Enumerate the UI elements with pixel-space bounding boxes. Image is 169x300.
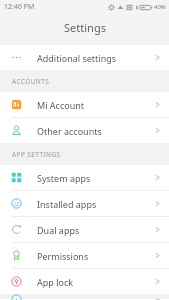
staticText: ACCOUNTS: [12, 77, 50, 86]
staticText: Other accounts: [37, 125, 102, 137]
button[interactable]: Additional settings: [0, 45, 169, 70]
staticText: Mi Account: [37, 99, 85, 111]
staticText: System apps: [37, 172, 91, 184]
staticText: Settings: [64, 20, 106, 35]
button[interactable]: System apps: [0, 165, 169, 190]
staticText: APP SETTINGS: [12, 150, 61, 159]
staticText: Dual apps: [37, 224, 80, 236]
staticText: Installed apps: [37, 198, 97, 210]
button[interactable]: Installed apps: [0, 191, 169, 216]
button[interactable]: Dual apps: [0, 217, 169, 242]
staticText: 12:46 PM: [4, 2, 35, 12]
staticText: App lock: [37, 276, 74, 288]
staticText: Permissions: [37, 250, 89, 262]
button[interactable]: Other accounts: [0, 118, 169, 143]
button[interactable]: Mi Account: [0, 92, 169, 117]
staticText: Additional settings: [37, 52, 117, 64]
button[interactable]: Permissions: [0, 243, 169, 268]
staticText: 40%: [154, 3, 166, 11]
button[interactable]: About phone: [0, 299, 169, 300]
button[interactable]: App lock: [0, 269, 169, 294]
